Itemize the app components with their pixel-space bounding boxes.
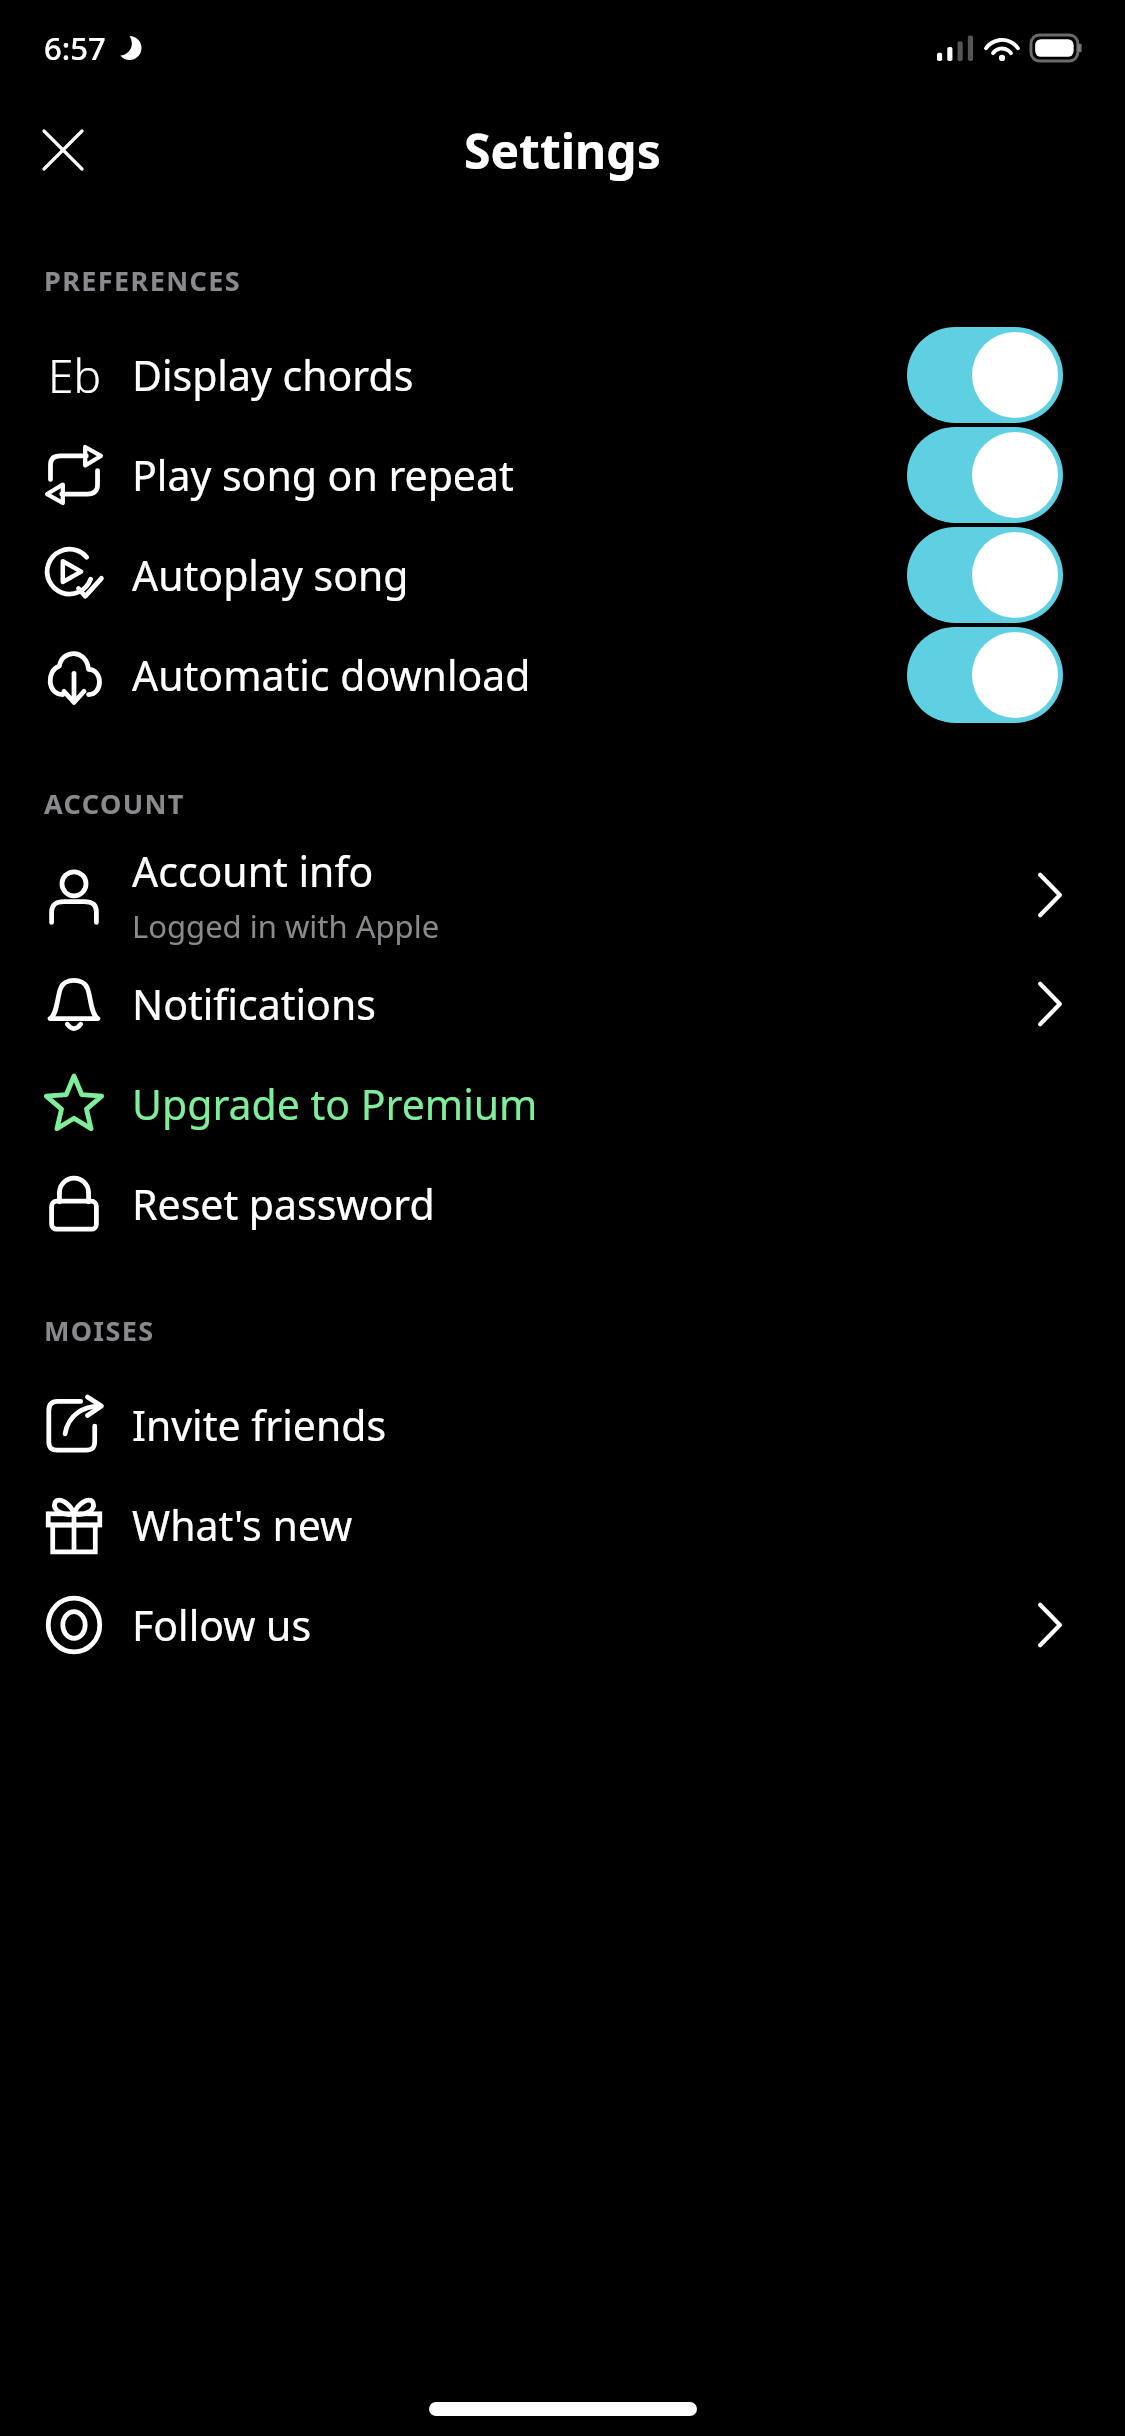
staticText: Settings: [464, 118, 661, 183]
button[interactable]: Close: [30, 117, 96, 183]
button[interactable]: Eb: [0, 325, 1125, 425]
staticText: Logged in with Apple: [132, 905, 440, 947]
button[interactable]: Account info: [0, 836, 1125, 954]
button[interactable]: Toggle: [907, 427, 1063, 523]
button[interactable]: Upgrade to Premium: [0, 1054, 1125, 1154]
button[interactable]: Toggle: [907, 327, 1063, 423]
button[interactable]: Play song on repeat: [0, 425, 1125, 525]
button[interactable]: Follow us: [0, 1575, 1125, 1675]
staticText: What's new: [132, 1497, 353, 1553]
staticText: Upgrade to Premium: [132, 1076, 538, 1132]
staticText: Invite friends: [132, 1397, 387, 1453]
button[interactable]: Toggle: [907, 527, 1063, 623]
button[interactable]: Invite friends: [0, 1375, 1125, 1475]
staticText: MOISES: [44, 1312, 155, 1349]
staticText: 6:57: [44, 27, 106, 69]
staticText: Eb: [48, 344, 101, 407]
button[interactable]: Notifications: [0, 954, 1125, 1054]
staticText: Play song on repeat: [132, 447, 907, 503]
button[interactable]: What's new: [0, 1475, 1125, 1575]
button[interactable]: Toggle: [907, 627, 1063, 723]
staticText: Follow us: [132, 1597, 312, 1653]
button[interactable]: Autoplay song: [0, 525, 1125, 625]
staticText: Display chords: [132, 347, 907, 403]
staticText: ACCOUNT: [44, 785, 185, 822]
staticText: Reset password: [132, 1176, 435, 1232]
staticText: Automatic download: [132, 647, 907, 703]
button[interactable]: Reset password: [0, 1154, 1125, 1254]
staticText: Account info: [132, 843, 374, 899]
staticText: Autoplay song: [132, 547, 907, 603]
button[interactable]: Automatic download: [0, 625, 1125, 725]
staticText: PREFERENCES: [44, 262, 242, 299]
staticText: Notifications: [132, 976, 376, 1032]
